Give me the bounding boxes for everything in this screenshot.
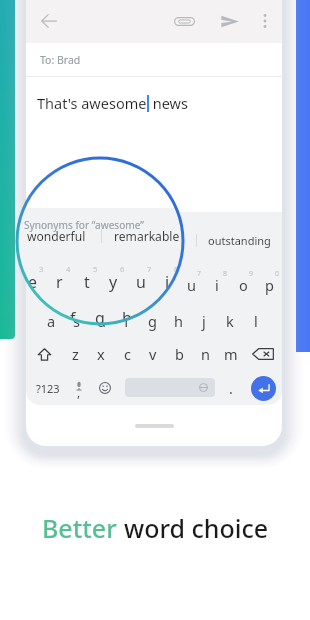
- button[interactable]: ?123: [32, 378, 64, 398]
- button[interactable]: .: [220, 377, 242, 399]
- button[interactable]: c: [114, 339, 140, 369]
- button[interactable]: m: [218, 339, 244, 369]
- staticText: 2: [69, 269, 74, 279]
- button[interactable]: h: [113, 298, 140, 324]
- staticText: t: [136, 275, 142, 295]
- staticText: 6: [120, 264, 125, 274]
- staticText: wonderful: [27, 228, 86, 244]
- staticText: w: [58, 275, 70, 295]
- staticText: word choice: [124, 511, 269, 545]
- button[interactable]: Enter: [249, 374, 277, 402]
- button[interactable]: s: [64, 303, 89, 333]
- button[interactable]: More options: [251, 7, 279, 35]
- staticText: That's awesome: [37, 93, 147, 113]
- button[interactable]: k: [217, 303, 243, 333]
- button[interactable]: 4: [46, 262, 73, 295]
- button[interactable]: 8: [204, 267, 230, 297]
- button[interactable]: Space: [125, 378, 215, 397]
- staticText: k: [176, 307, 183, 324]
- button[interactable]: Voice input: [68, 377, 90, 399]
- button[interactable]: Back: [35, 7, 63, 35]
- button[interactable]: k: [167, 298, 183, 324]
- staticText: ,: [77, 384, 81, 400]
- staticText: .: [229, 379, 233, 398]
- button[interactable]: 6: [100, 262, 127, 295]
- staticText: m: [224, 344, 238, 364]
- button[interactable]: Shift: [26, 339, 63, 369]
- staticText: q: [34, 275, 43, 295]
- button[interactable]: 8: [154, 262, 181, 295]
- button[interactable]: 5: [126, 267, 152, 297]
- staticText: ?123: [36, 381, 60, 396]
- staticText: p: [265, 275, 274, 295]
- button[interactable]: n: [192, 339, 218, 369]
- staticText: u: [136, 271, 146, 293]
- staticText: r: [111, 275, 117, 295]
- button[interactable]: a: [39, 303, 64, 333]
- button[interactable]: z: [63, 339, 88, 369]
- staticText: n: [201, 344, 210, 364]
- button[interactable]: 9: [181, 262, 183, 295]
- button[interactable]: 5: [73, 262, 100, 295]
- button[interactable]: j: [140, 298, 167, 324]
- staticText: u: [187, 275, 196, 295]
- button[interactable]: Emoji: [94, 377, 116, 399]
- staticText: 9: [249, 269, 254, 279]
- button[interactable]: wonderful: [26, 230, 110, 250]
- button[interactable]: outstanding: [197, 230, 282, 250]
- button[interactable]: 1: [26, 267, 51, 297]
- staticText: e: [28, 271, 37, 293]
- button[interactable]: 2: [51, 267, 76, 297]
- staticText: news: [149, 93, 188, 113]
- button[interactable]: wonderful: [17, 225, 101, 247]
- button[interactable]: 3: [76, 267, 101, 297]
- button[interactable]: remarkable: [111, 230, 196, 250]
- staticText: 3: [94, 269, 99, 279]
- button[interactable]: 7: [127, 262, 154, 295]
- button[interactable]: b: [166, 339, 192, 369]
- staticText: s: [73, 311, 80, 331]
- button[interactable]: 4: [101, 267, 126, 297]
- staticText: 4: [66, 264, 71, 274]
- staticText: g: [148, 311, 157, 331]
- staticText: f: [70, 307, 76, 324]
- button[interactable]: s: [17, 298, 32, 324]
- staticText: To: Brad: [40, 53, 81, 67]
- staticText: f: [124, 311, 129, 331]
- button[interactable]: 9: [230, 267, 256, 297]
- staticText: 4: [119, 269, 124, 279]
- button[interactable]: d: [89, 303, 114, 333]
- staticText: 7: [147, 264, 152, 274]
- staticText: 5: [145, 269, 150, 279]
- staticText: e: [84, 275, 93, 295]
- staticText: j: [202, 311, 206, 331]
- button[interactable]: 3: [19, 262, 46, 295]
- button[interactable]: v: [140, 339, 166, 369]
- button[interactable]: remarkable: [102, 225, 183, 247]
- button[interactable]: 6: [152, 267, 178, 297]
- staticText: r: [56, 271, 63, 293]
- staticText: i: [165, 271, 170, 293]
- staticText: h: [174, 311, 183, 331]
- button[interactable]: g: [139, 303, 165, 333]
- button[interactable]: d: [32, 298, 59, 324]
- staticText: g: [95, 307, 105, 324]
- button[interactable]: 2: [17, 262, 19, 295]
- button[interactable]: f: [114, 303, 139, 333]
- staticText: a: [47, 311, 56, 331]
- button[interactable]: 7: [178, 267, 204, 297]
- button[interactable]: Attach: [170, 7, 198, 35]
- button[interactable]: f: [59, 298, 86, 324]
- button[interactable]: l: [243, 303, 269, 333]
- staticText: 8: [174, 264, 179, 274]
- button[interactable]: h: [165, 303, 191, 333]
- button[interactable]: 0: [256, 267, 282, 297]
- staticText: c: [124, 344, 131, 364]
- staticText: 0: [275, 269, 280, 279]
- button[interactable]: j: [191, 303, 217, 333]
- staticText: remarkable: [114, 228, 180, 244]
- button[interactable]: x: [88, 339, 114, 369]
- button[interactable]: Backspace: [244, 339, 282, 369]
- button[interactable]: Send: [216, 7, 244, 35]
- button[interactable]: g: [86, 298, 113, 324]
